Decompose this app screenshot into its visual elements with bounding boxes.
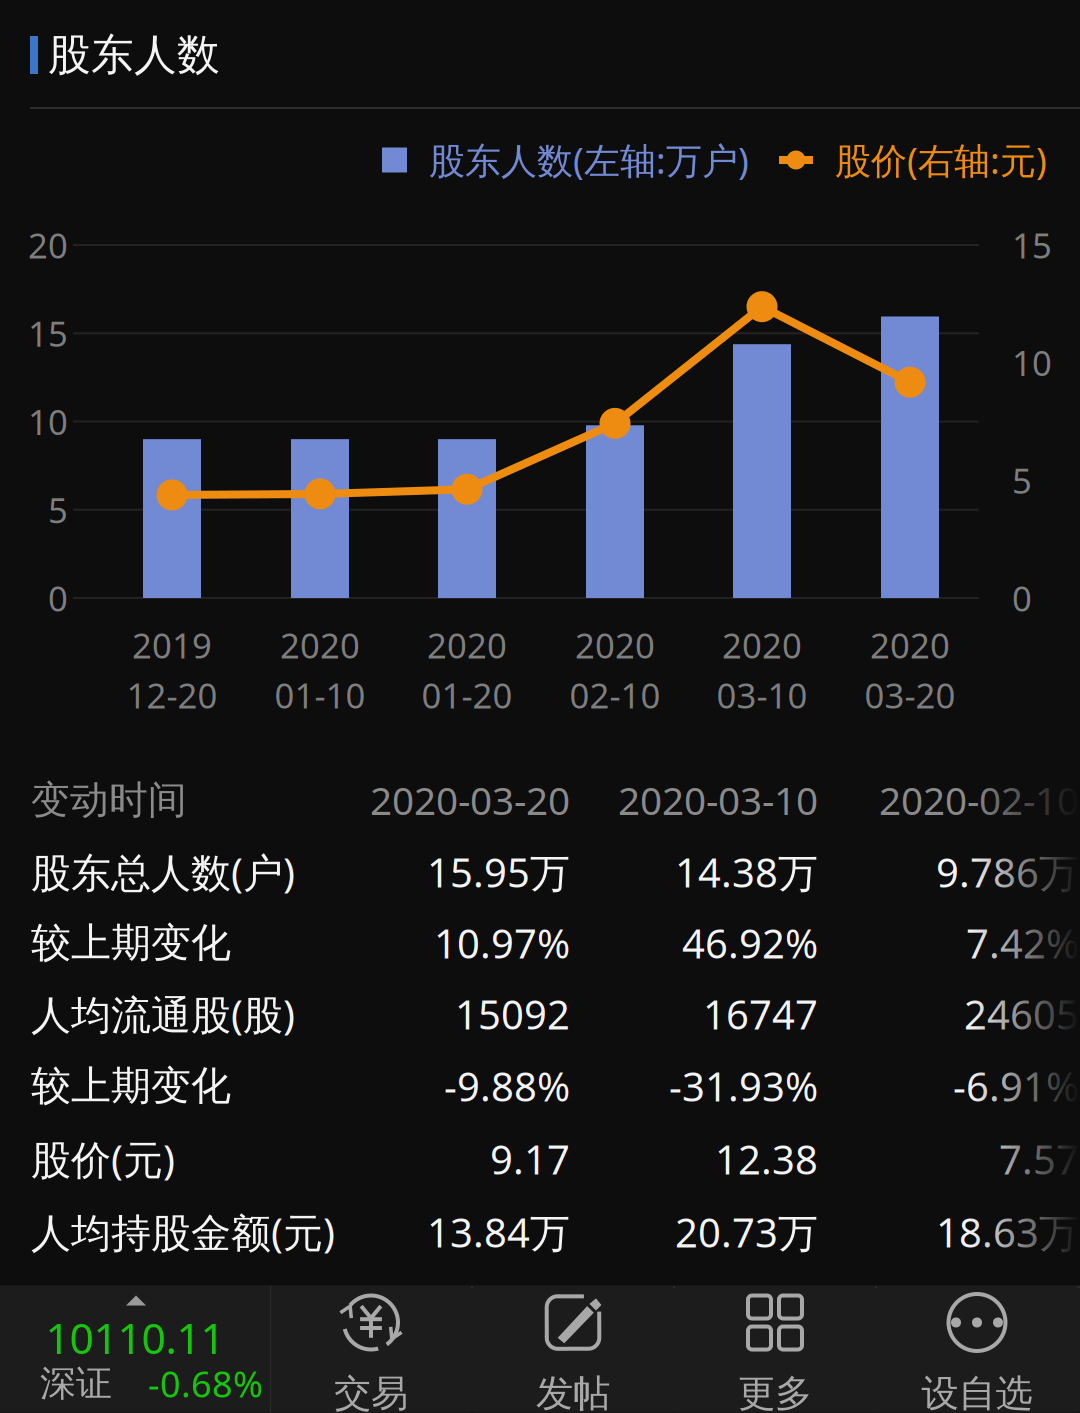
staticText: 03-10	[716, 672, 807, 718]
staticText: 5	[48, 487, 68, 533]
staticText: 20	[28, 222, 68, 268]
staticText: 13.84万	[427, 1205, 570, 1258]
staticText: 较上期变化	[31, 918, 231, 967]
staticText: 15092	[455, 987, 570, 1040]
staticText: 设自选	[921, 1371, 1032, 1413]
staticText: 交易	[334, 1371, 408, 1413]
staticText: 0	[48, 575, 68, 621]
button[interactable]: 更多	[675, 1285, 875, 1412]
staticText: -9.88%	[444, 1059, 570, 1112]
staticText: 0	[1012, 575, 1032, 621]
staticText: 10	[28, 398, 68, 444]
staticText: 股价(右轴:元)	[813, 136, 1047, 184]
staticText: -6.91%	[953, 1059, 1079, 1112]
staticText: 变动时间	[31, 776, 187, 824]
staticText: 深证	[40, 1361, 112, 1406]
staticText: 03-20	[864, 672, 955, 718]
staticText: 2020-03-10	[618, 774, 818, 826]
staticText: 2020	[427, 622, 507, 668]
staticText: 18.63万	[936, 1205, 1079, 1258]
staticText: 5	[1012, 457, 1032, 503]
staticText: 15	[1012, 222, 1052, 268]
staticText: 24605	[964, 987, 1079, 1040]
staticText: 9.17	[490, 1132, 570, 1185]
button[interactable]: 设自选	[877, 1285, 1077, 1412]
staticText: 2020	[722, 622, 802, 668]
staticText: 人均流通股(股)	[31, 987, 295, 1040]
staticText: 16747	[703, 987, 818, 1040]
staticText: 01-20	[421, 672, 512, 718]
staticText: 14.38万	[675, 845, 818, 898]
button[interactable]: 发帖	[473, 1285, 673, 1412]
staticText: 股东总人数(户)	[31, 845, 295, 898]
staticText: 2019	[132, 622, 212, 668]
staticText: 10.97%	[434, 916, 570, 969]
button[interactable]: 深证 10110.11 -0.68%	[0, 1285, 270, 1412]
staticText: 10	[1012, 340, 1052, 386]
staticText: 7.42%	[966, 916, 1079, 969]
staticText: 发帖	[536, 1371, 610, 1413]
staticText: 7.57	[999, 1132, 1079, 1185]
staticText: -31.93%	[669, 1059, 818, 1112]
button[interactable]: 交易	[271, 1285, 471, 1412]
staticText: 12-20	[126, 672, 217, 718]
staticText: 2020	[280, 622, 360, 668]
staticText: 20.73万	[675, 1205, 818, 1258]
staticText: 股东人数	[48, 29, 220, 81]
staticText: 15.95万	[427, 845, 570, 898]
staticText: 2020-02-10	[879, 774, 1079, 826]
staticText: 股东人数(左轴:万户)	[407, 136, 749, 184]
staticText: 10110.11	[45, 1309, 224, 1366]
staticText: -0.68%	[148, 1360, 263, 1407]
staticText: 9.786万	[936, 845, 1079, 898]
staticText: 02-10	[569, 672, 660, 718]
staticText: 更多	[738, 1371, 812, 1413]
staticText: 人均持股金额(元)	[31, 1205, 335, 1258]
staticText: 01-10	[274, 672, 365, 718]
staticText: 2020-03-20	[370, 774, 570, 826]
staticText: 2020	[870, 622, 950, 668]
staticText: 股价(元)	[31, 1132, 175, 1185]
staticText: 46.92%	[682, 916, 818, 969]
staticText: 较上期变化	[31, 1061, 231, 1110]
staticText: 2020	[575, 622, 655, 668]
staticText: 12.38	[715, 1132, 818, 1185]
staticText: 15	[28, 310, 68, 356]
